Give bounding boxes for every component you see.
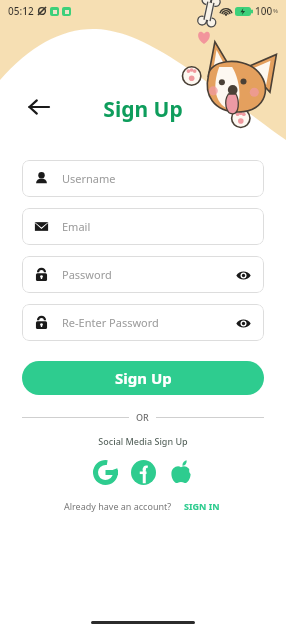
staticText: 100 [255,4,273,18]
button[interactable]: Sign up with Google [89,456,121,488]
staticText: Sign Up [115,368,172,388]
staticText: 05:12 [8,4,34,18]
staticText: Already have an account? [64,500,172,512]
button[interactable]: Back [22,90,56,124]
button[interactable]: Password [22,256,264,293]
button[interactable]: Email [22,208,264,245]
button[interactable]: Sign Up [22,361,264,395]
button[interactable]: Toggle password visibility [234,314,252,332]
button[interactable]: SIGN IN [182,498,222,514]
staticText: SIGN IN [184,500,220,512]
staticText: Social Media Sign Up [22,435,264,447]
staticText: OR [136,411,149,423]
staticText: Username [62,171,116,186]
button[interactable]: Re-Enter Password [22,304,264,341]
button[interactable]: Toggle password visibility [234,266,252,284]
staticText: Sign Up [0,95,286,124]
button[interactable]: Sign up with Apple [165,456,197,488]
staticText: Re-Enter Password [62,315,159,330]
staticText: Password [62,267,112,282]
button[interactable]: Username [22,160,264,197]
staticText: Email [62,219,91,234]
staticText: % [273,7,278,15]
button[interactable]: Sign up with Facebook [127,456,159,488]
